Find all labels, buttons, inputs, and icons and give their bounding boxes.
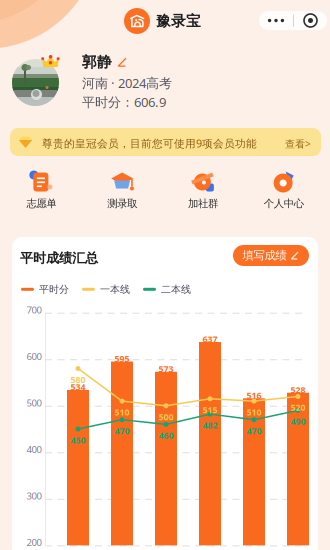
- button[interactable]: 测录取: [82, 172, 163, 210]
- staticText: 平时分：606.9: [82, 93, 166, 111]
- button[interactable]: More options: [259, 11, 327, 30]
- staticText: 河南 · 2024高考: [82, 74, 172, 92]
- staticText: 528: [290, 384, 305, 396]
- staticText: 595: [114, 353, 129, 365]
- staticText: 460: [158, 429, 173, 441]
- staticText: 500: [158, 411, 173, 423]
- button[interactable]: 尊贵的皇冠会员，目前您可使用9项会员功能: [10, 128, 321, 156]
- staticText: 平时成绩汇总: [20, 250, 98, 266]
- staticText: 510: [114, 406, 129, 418]
- staticText: 470: [114, 425, 129, 437]
- staticText: 查看>: [285, 137, 311, 151]
- staticText: 637: [202, 333, 217, 345]
- button[interactable]: 加社群: [162, 172, 243, 210]
- button[interactable]: 填写成绩: [233, 245, 309, 266]
- staticText: 二本线: [161, 283, 191, 296]
- staticText: 580: [70, 373, 85, 385]
- staticText: 加社群: [188, 197, 218, 210]
- staticText: 郭静: [82, 53, 112, 71]
- staticText: 一本线: [100, 283, 130, 296]
- staticText: 700: [27, 303, 42, 316]
- staticText: 450: [70, 434, 85, 446]
- staticText: 515: [202, 404, 217, 416]
- staticText: 482: [202, 419, 217, 431]
- staticText: 534: [70, 381, 85, 393]
- staticText: 600: [27, 350, 42, 363]
- staticText: 490: [290, 415, 305, 427]
- staticText: 510: [246, 406, 261, 418]
- staticText: 志愿单: [26, 197, 56, 210]
- staticText: 200: [27, 536, 42, 549]
- button[interactable]: 志愿单: [1, 172, 82, 210]
- staticText: 豫录宝: [156, 12, 201, 30]
- staticText: 300: [27, 489, 42, 502]
- staticText: 573: [158, 363, 173, 375]
- staticText: 470: [246, 425, 261, 437]
- staticText: 520: [290, 401, 305, 413]
- staticText: 500: [27, 396, 42, 409]
- staticText: 尊贵的皇冠会员，目前您可使用9项会员功能: [42, 136, 257, 150]
- staticText: 测录取: [107, 197, 137, 210]
- button[interactable]: Profile photo: [12, 59, 61, 106]
- staticText: 400: [27, 443, 42, 456]
- staticText: 平时分: [39, 283, 69, 296]
- staticText: 填写成绩: [242, 248, 286, 263]
- button[interactable]: 个人中心: [243, 172, 324, 210]
- staticText: 个人中心: [264, 197, 304, 210]
- staticText: 516: [246, 389, 261, 401]
